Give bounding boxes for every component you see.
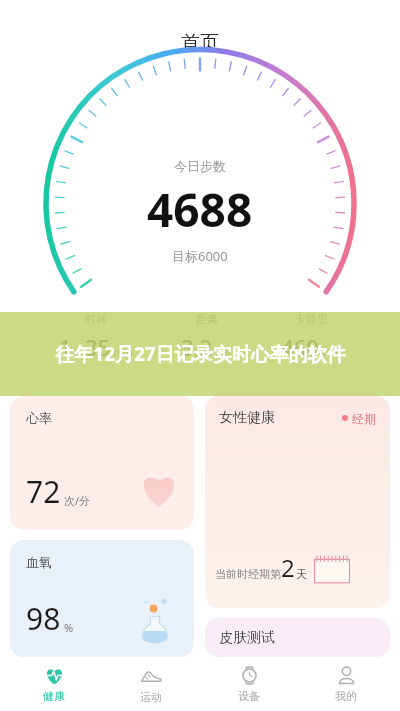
- button[interactable]: 女性健康: [205, 396, 390, 608]
- button[interactable]: 我的: [303, 657, 389, 711]
- button[interactable]: 皮肤测试: [205, 618, 390, 657]
- staticText: 4688: [147, 178, 253, 241]
- staticText: min: [113, 344, 133, 359]
- staticText: 1: [59, 332, 72, 362]
- button[interactable]: 运动: [108, 657, 194, 711]
- staticText: km: [215, 344, 232, 359]
- staticText: 皮肤测试: [219, 629, 275, 647]
- staticText: 经期: [352, 411, 376, 426]
- staticText: 2: [281, 551, 295, 584]
- staticText: 往年12月27日记录实时心率的软件: [55, 341, 346, 367]
- other: 设备: [239, 665, 260, 686]
- staticText: 卡路里: [295, 312, 328, 326]
- other: 健康: [44, 665, 65, 686]
- staticText: 心率: [26, 410, 52, 426]
- button[interactable]: 设备: [206, 657, 292, 711]
- button[interactable]: 健康: [11, 657, 97, 711]
- staticText: 35: [85, 332, 111, 362]
- staticText: h: [74, 344, 81, 359]
- staticText: 我的: [335, 689, 357, 703]
- staticText: 460: [281, 332, 319, 362]
- other: 运动: [140, 665, 162, 687]
- staticText: 健康: [43, 689, 65, 703]
- staticText: 距离: [196, 312, 218, 326]
- staticText: 设备: [238, 689, 260, 703]
- button[interactable]: 心率: [10, 396, 194, 530]
- staticText: 目标6000: [172, 247, 228, 265]
- staticText: 72: [26, 471, 61, 512]
- staticText: 血氧: [26, 554, 52, 570]
- staticText: 首页: [181, 31, 219, 55]
- staticText: 运动: [140, 690, 162, 704]
- staticText: 3.2: [181, 332, 213, 362]
- button[interactable]: 血氧: [10, 540, 194, 657]
- staticText: 次/分: [64, 493, 91, 508]
- staticText: %: [64, 620, 74, 635]
- staticText: 当前时经期第: [215, 567, 281, 581]
- staticText: 时间: [85, 312, 107, 326]
- staticText: kcal: [321, 344, 342, 359]
- other: 我的: [336, 665, 357, 686]
- staticText: 女性健康: [219, 409, 275, 427]
- staticText: 今日步数: [174, 158, 226, 174]
- staticText: 天: [296, 567, 307, 581]
- staticText: 98: [26, 598, 61, 639]
